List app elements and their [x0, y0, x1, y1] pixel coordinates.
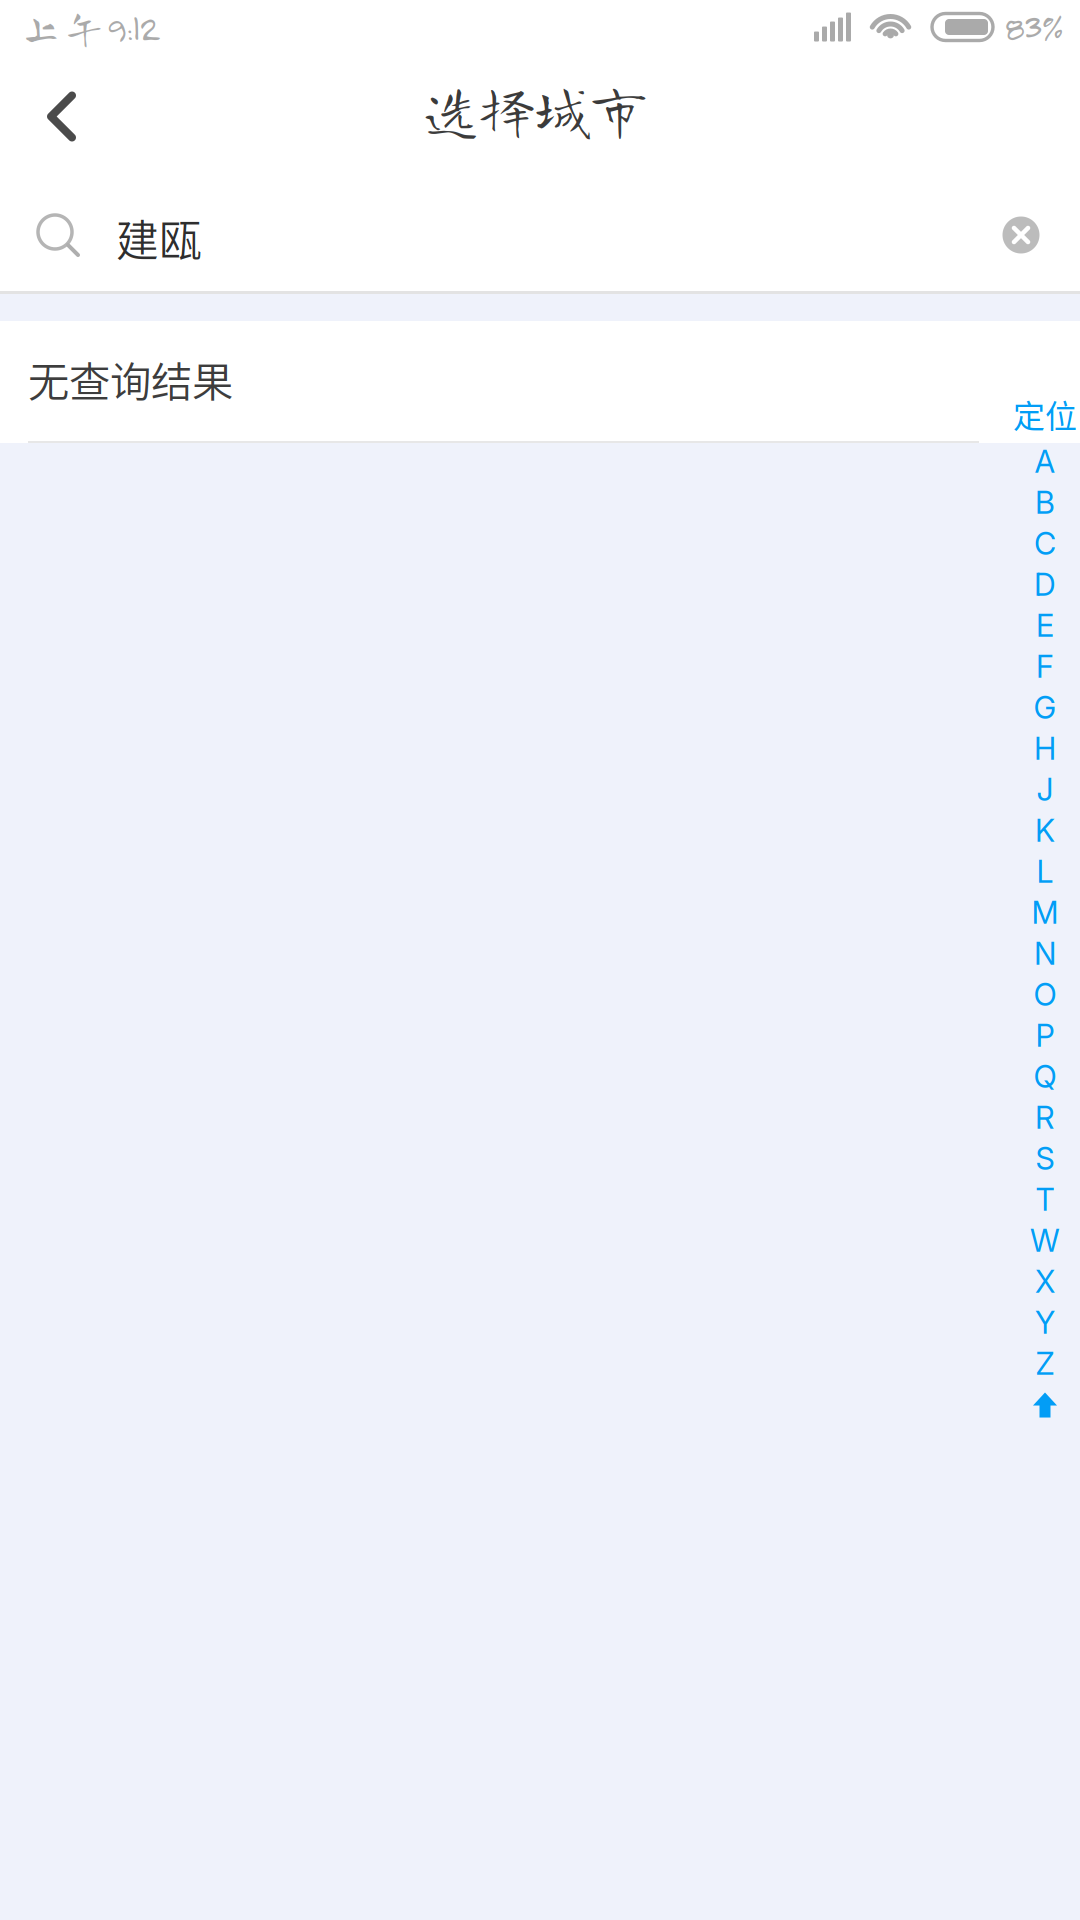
staticText: S	[1035, 1140, 1054, 1177]
button[interactable]: G	[1010, 687, 1080, 728]
button[interactable]: P	[1010, 1015, 1080, 1056]
button[interactable]: 清除	[977, 191, 1065, 279]
staticText: J	[1036, 771, 1053, 808]
staticText: G	[1033, 689, 1056, 726]
button[interactable]: Z	[1010, 1343, 1080, 1384]
staticText: Q	[1033, 1058, 1056, 1095]
button[interactable]: X	[1010, 1261, 1080, 1302]
staticText: B	[1035, 484, 1055, 521]
staticText: 定位	[1013, 391, 1077, 437]
button[interactable]: L	[1010, 851, 1080, 892]
staticText: 选择城市	[423, 81, 647, 137]
button[interactable]: W	[1010, 1220, 1080, 1261]
button[interactable]: O	[1010, 974, 1080, 1015]
button[interactable]: M	[1010, 892, 1080, 933]
staticText: 83%	[1004, 5, 1062, 49]
button[interactable]: N	[1010, 933, 1080, 974]
staticText: H	[1034, 730, 1056, 767]
button[interactable]: K	[1010, 810, 1080, 851]
staticText: N	[1034, 935, 1056, 972]
button[interactable]: S	[1010, 1138, 1080, 1179]
button[interactable]: R	[1010, 1097, 1080, 1138]
staticText: F	[1036, 648, 1054, 685]
staticText: K	[1035, 812, 1055, 849]
staticText: T	[1035, 1181, 1054, 1218]
button[interactable]: T	[1010, 1179, 1080, 1220]
button[interactable]: Y	[1010, 1302, 1080, 1343]
staticText: E	[1036, 607, 1054, 644]
button[interactable]: D	[1010, 564, 1080, 605]
staticText: L	[1036, 853, 1053, 890]
button[interactable]: Q	[1010, 1056, 1080, 1097]
button[interactable]: A	[1010, 441, 1080, 482]
staticText: D	[1034, 566, 1056, 603]
staticText: R	[1035, 1099, 1055, 1136]
button[interactable]: H	[1010, 728, 1080, 769]
button[interactable]: J	[1010, 769, 1080, 810]
button[interactable]: F	[1010, 646, 1080, 687]
button[interactable]: 定位	[1010, 395, 1080, 441]
button[interactable]: E	[1010, 605, 1080, 646]
staticText: Y	[1035, 1304, 1055, 1341]
staticText: 无查询结果	[28, 349, 233, 409]
staticText: P	[1035, 1017, 1054, 1054]
button[interactable]: 返回	[0, 54, 140, 179]
staticText: C	[1034, 525, 1056, 562]
button[interactable]: B	[1010, 482, 1080, 523]
button[interactable]: C	[1010, 523, 1080, 564]
staticText: M	[1031, 894, 1058, 931]
button[interactable]: 回到顶部	[1010, 1384, 1080, 1426]
staticText: W	[1030, 1222, 1060, 1259]
staticText: A	[1034, 443, 1055, 480]
staticText: 建瓯	[116, 207, 202, 269]
staticText: O	[1033, 976, 1056, 1013]
staticText: Z	[1035, 1345, 1054, 1382]
staticText: 上午9:12	[20, 6, 159, 48]
staticText: X	[1035, 1263, 1055, 1300]
